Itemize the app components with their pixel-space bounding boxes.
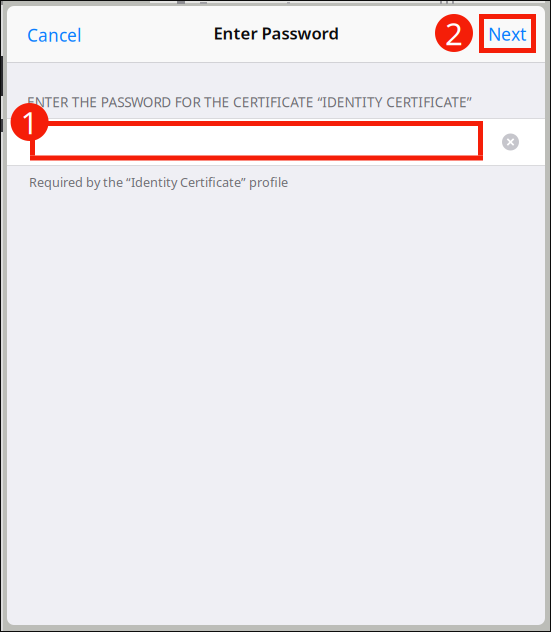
staticText: Required by the “Identity Certificate” p… (29, 173, 288, 191)
staticText: ENTER THE PASSWORD FOR THE CERTIFICATE “… (27, 93, 472, 111)
staticText: 1 (21, 101, 39, 143)
staticText: Cancel (27, 23, 81, 47)
button[interactable]: Cancel (15, 19, 91, 51)
button[interactable]: Password (7, 118, 545, 166)
staticText: Next (488, 22, 526, 46)
staticText: Enter Password (213, 22, 338, 44)
button[interactable]: Next (474, 18, 537, 50)
staticText: 2 (445, 12, 463, 54)
button[interactable]: Clear text (496, 127, 525, 156)
